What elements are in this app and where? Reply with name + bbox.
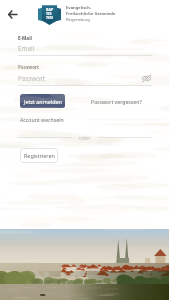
staticText: Freikirchliche Gemeinde (66, 11, 116, 17)
staticText: BAP TIS TEN (46, 7, 54, 20)
staticText: Passwort (18, 64, 40, 70)
staticText: Jetzt anmelden (24, 98, 62, 105)
staticText: Passwort (18, 74, 141, 83)
staticText: Passwort vergessen? (91, 98, 142, 105)
button[interactable]: Registrieren (20, 148, 58, 163)
button[interactable]: Zurück (4, 6, 20, 22)
staticText: E-Mail (18, 35, 32, 41)
staticText: Email (18, 44, 35, 53)
button[interactable]: Passwort anzeigen (141, 73, 152, 84)
staticText: Evangelisch- (66, 5, 92, 11)
staticText: Registrieren (24, 152, 55, 159)
staticText: oder (79, 134, 91, 141)
button[interactable]: Jetzt anmelden (20, 94, 65, 108)
staticText: Regensburg (66, 17, 90, 23)
button[interactable]: Passwort vergessen? (91, 98, 142, 105)
staticText: Account wechseln (20, 116, 64, 123)
button[interactable]: Account wechseln (20, 116, 64, 123)
